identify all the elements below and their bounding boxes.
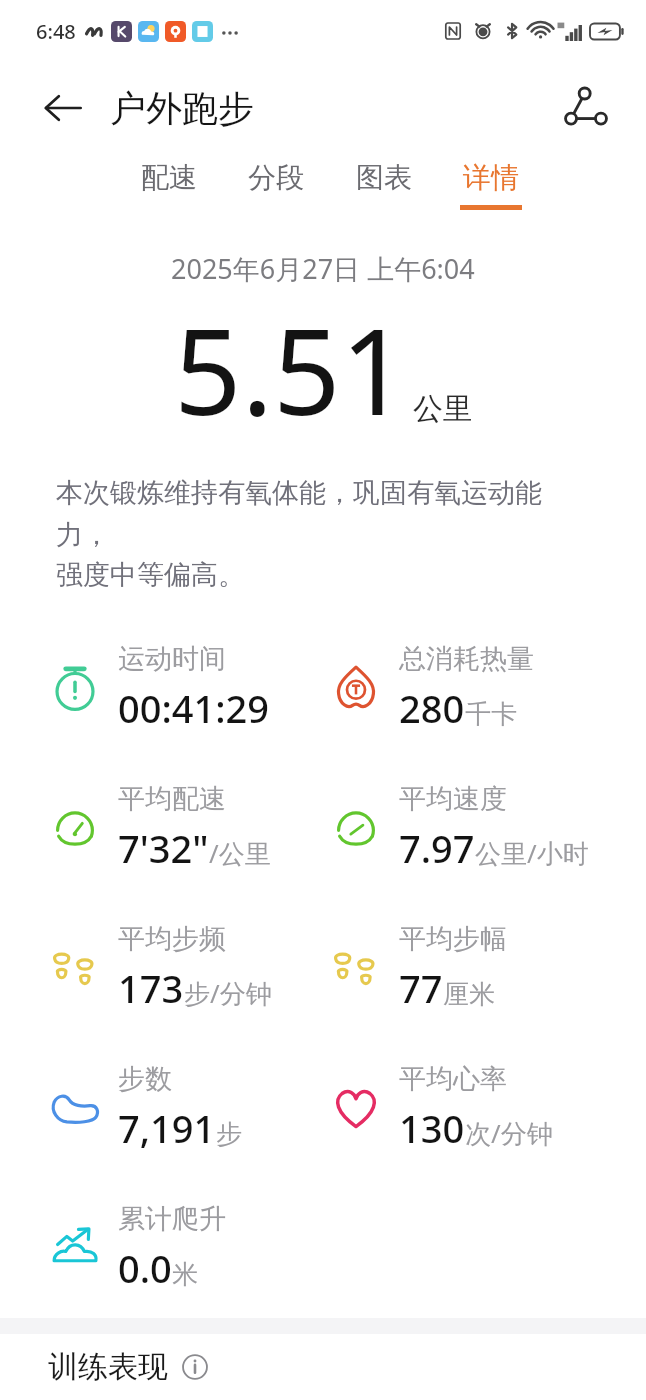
staticText: 步 xyxy=(216,1118,242,1151)
staticText: 平均速度 xyxy=(399,782,507,816)
button[interactable]: Back xyxy=(36,81,90,135)
button[interactable]: 运动时间 xyxy=(46,618,323,758)
staticText: 运动时间 xyxy=(118,642,226,676)
button[interactable]: 平均步频 xyxy=(46,898,323,1038)
staticText: 公里/小时 xyxy=(475,835,589,871)
button[interactable]: 训练表现 xyxy=(0,1334,646,1400)
staticText: 详情 xyxy=(463,160,519,195)
button[interactable]: 步数 xyxy=(46,1038,323,1178)
staticText: 2025年6月27日 上午6:04 xyxy=(171,250,475,287)
staticText: 7'32" xyxy=(118,822,209,874)
staticText: 00:41:29 xyxy=(118,682,270,734)
staticText: 130 xyxy=(399,1102,465,1154)
button[interactable]: Share xyxy=(556,78,616,138)
staticText: 米 xyxy=(172,1258,198,1291)
staticText: 户外跑步 xyxy=(110,86,254,131)
staticText: 千卡 xyxy=(465,698,517,731)
staticText: 图表 xyxy=(356,160,412,195)
button[interactable]: 累计爬升 xyxy=(46,1178,323,1318)
staticText: 平均步频 xyxy=(118,922,226,956)
button[interactable]: 平均配速 xyxy=(46,758,323,898)
staticText: 强度中等偏高。 xyxy=(56,558,245,592)
staticText: 173 xyxy=(118,962,184,1014)
staticText: 总消耗热量 xyxy=(399,642,534,676)
staticText: 5.51 xyxy=(174,289,409,450)
button[interactable]: 分段 xyxy=(241,154,311,216)
staticText: 0.0 xyxy=(118,1242,172,1294)
staticText: 平均心率 xyxy=(399,1062,507,1096)
staticText: 7,191 xyxy=(118,1102,216,1154)
staticText: 累计爬升 xyxy=(118,1202,226,1236)
staticText: 训练表现 xyxy=(48,1348,168,1386)
staticText: 公里 xyxy=(413,390,473,428)
staticText: 6:48 xyxy=(36,18,76,45)
staticText: 7.97 xyxy=(399,822,475,874)
staticText: 77 xyxy=(399,962,443,1014)
button[interactable]: 平均步幅 xyxy=(327,898,646,1038)
button[interactable]: 图表 xyxy=(349,154,419,216)
staticText: 平均配速 xyxy=(118,782,226,816)
staticText: 本次锻炼维持有氧体能，巩固有氧运动能力， xyxy=(56,476,590,552)
staticText: /公里 xyxy=(209,835,271,871)
staticText: 280 xyxy=(399,682,465,734)
staticText: 次/分钟 xyxy=(465,1115,553,1151)
button[interactable]: 详情 xyxy=(456,154,526,216)
staticText: 厘米 xyxy=(443,978,495,1011)
button[interactable]: 平均心率 xyxy=(327,1038,646,1178)
staticText: 配速 xyxy=(141,160,197,195)
staticText: 步/分钟 xyxy=(184,975,272,1011)
staticText: 分段 xyxy=(248,160,304,195)
staticText: 平均步幅 xyxy=(399,922,507,956)
button[interactable]: 配速 xyxy=(134,154,204,216)
staticText: 步数 xyxy=(118,1062,172,1096)
button[interactable]: 平均速度 xyxy=(327,758,646,898)
button[interactable]: 总消耗热量 xyxy=(327,618,646,758)
